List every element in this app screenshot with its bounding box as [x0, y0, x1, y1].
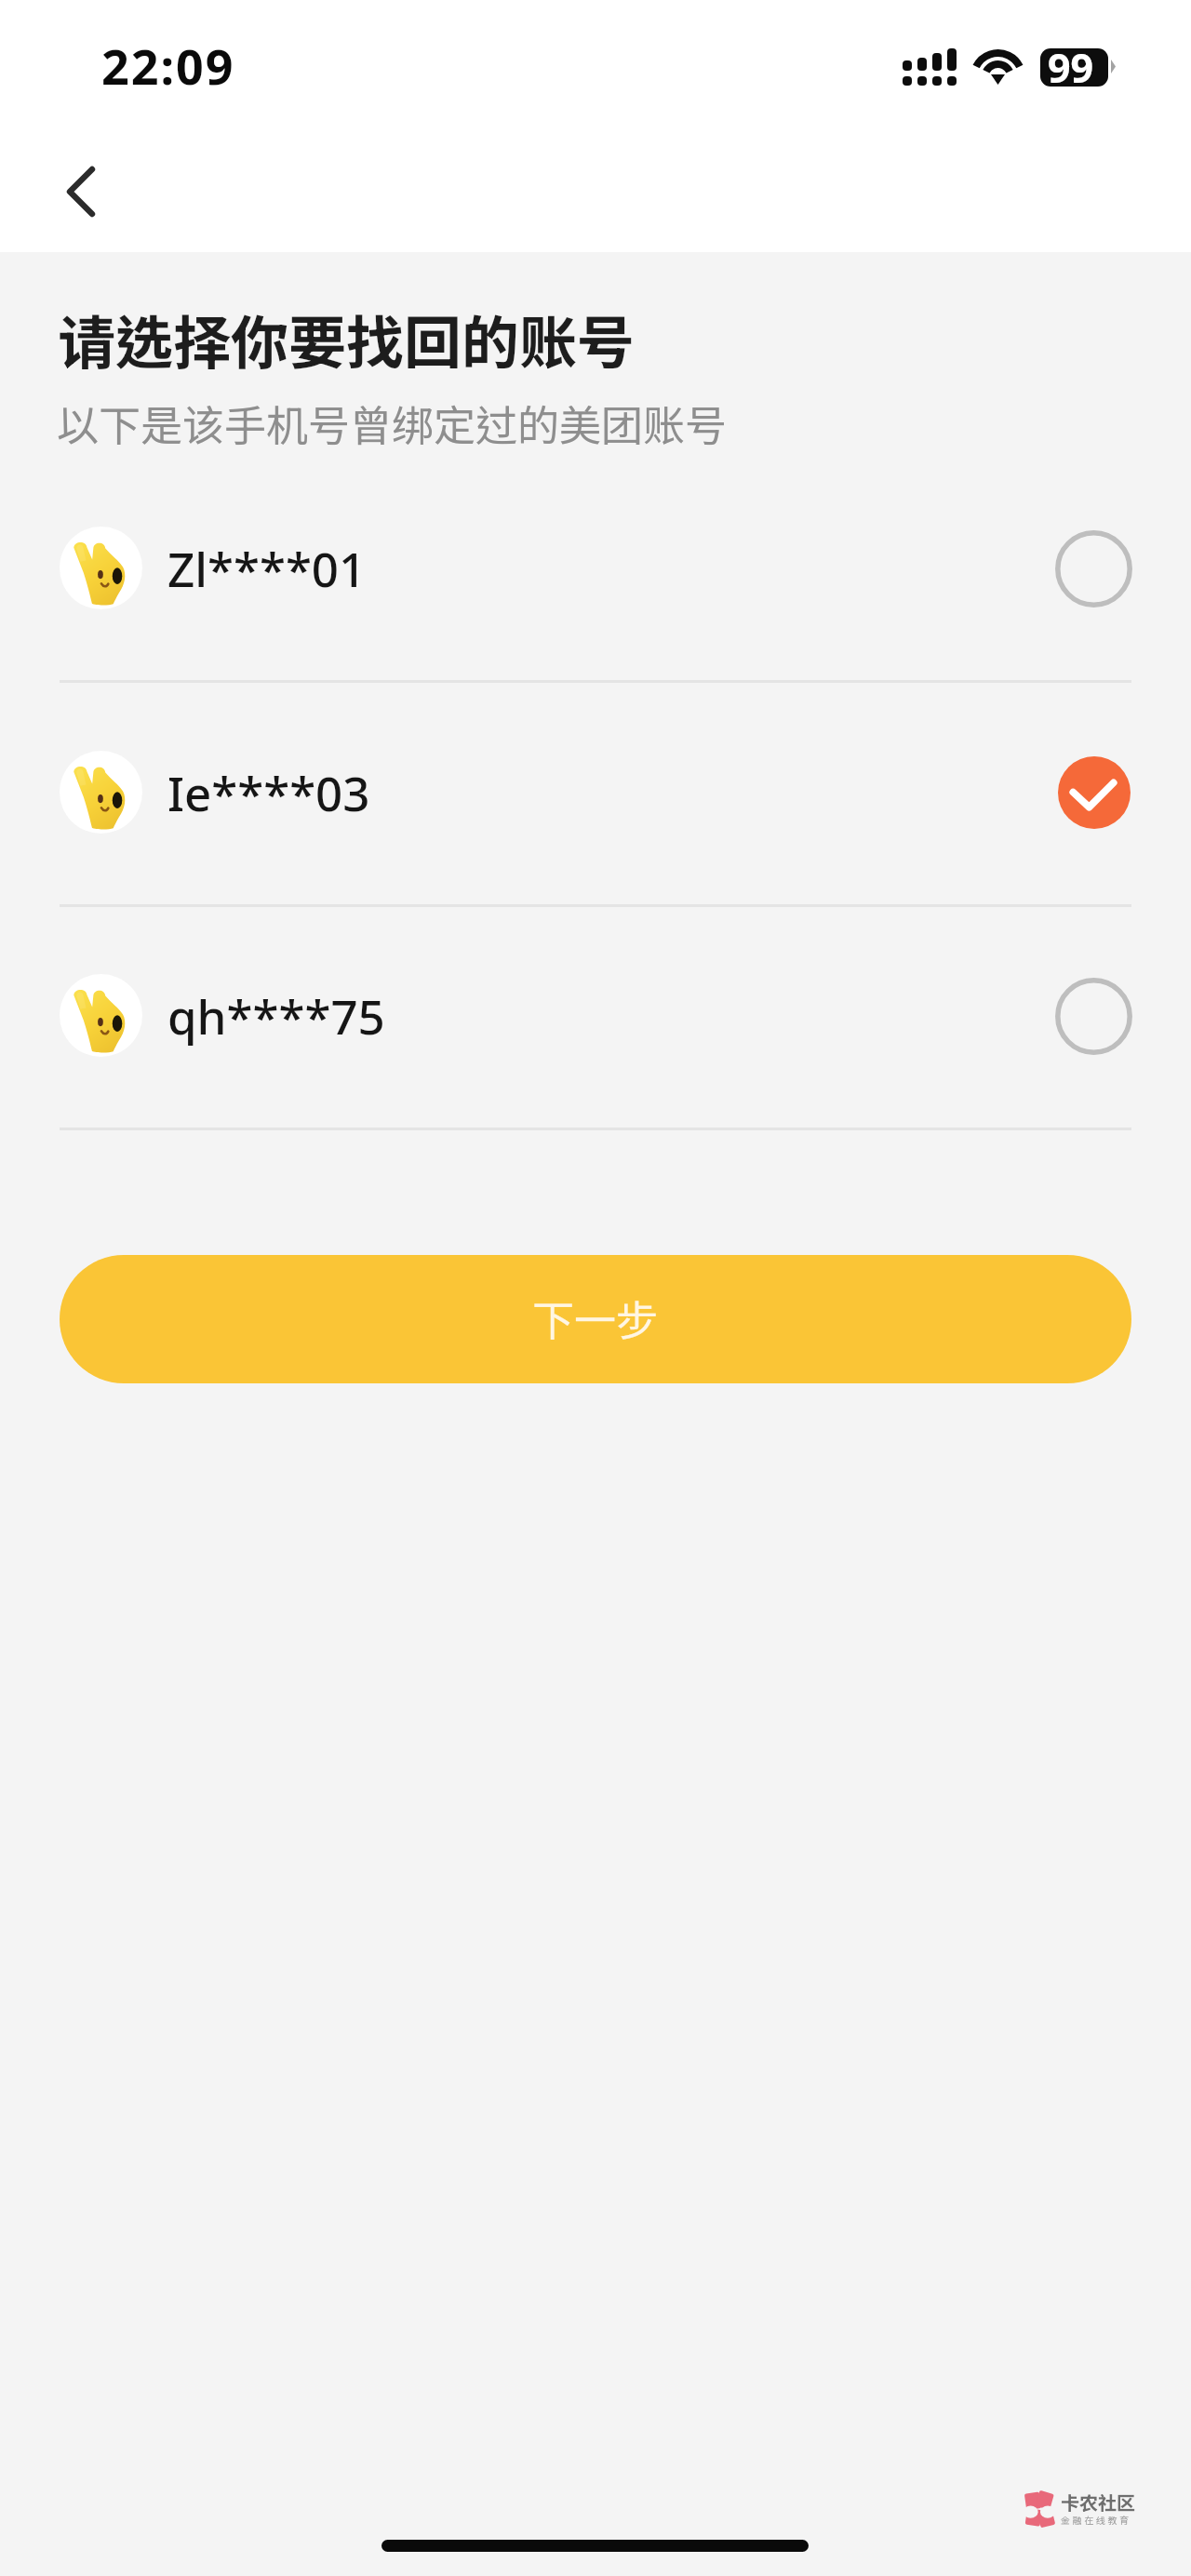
staticText: qh****75 — [167, 983, 385, 1048]
staticText: 22:09 — [101, 33, 235, 99]
button[interactable]: Back — [31, 140, 133, 243]
staticText: 卡农社区 — [1061, 2492, 1135, 2515]
staticText: Zl****01 — [167, 536, 367, 600]
button[interactable]: 下一步 — [60, 1255, 1131, 1383]
staticText: 金融在线教育 — [1061, 2515, 1131, 2526]
staticText: Ie****03 — [167, 760, 370, 824]
staticText: 99 — [1048, 40, 1094, 95]
button[interactable]: qh****75 — [0, 903, 1191, 1128]
staticText: 请选择你要找回的账号 — [58, 308, 636, 376]
button[interactable]: Ie****03 — [0, 680, 1191, 904]
staticText: 下一步 — [532, 1295, 659, 1344]
button[interactable]: Zl****01 — [0, 456, 1191, 680]
staticText: 以下是该手机号曾绑定过的美团账号 — [57, 400, 728, 449]
